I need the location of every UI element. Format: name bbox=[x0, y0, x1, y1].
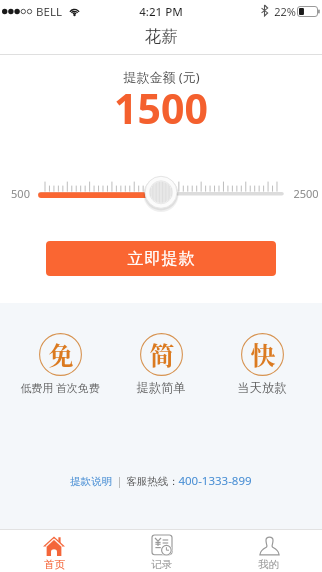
staticText: 花薪 bbox=[145, 26, 178, 47]
button[interactable] bbox=[0, 175, 322, 211]
staticText: BELL bbox=[36, 4, 62, 20]
staticText: 快 bbox=[250, 336, 276, 372]
staticText: 400-1333-899 bbox=[178, 473, 252, 489]
staticText: 立即提款 bbox=[127, 249, 195, 269]
button[interactable]: 记录 bbox=[108, 529, 215, 572]
staticText: 提款说明 bbox=[70, 475, 112, 488]
staticText: 免 bbox=[48, 336, 74, 372]
staticText: 提款简单 bbox=[136, 380, 186, 395]
staticText: 记录 bbox=[151, 558, 172, 571]
button[interactable]: 简 bbox=[101, 333, 221, 395]
button[interactable]: 我的 bbox=[215, 529, 322, 572]
staticText: 我的 bbox=[258, 558, 279, 571]
button[interactable]: 立即提款 bbox=[46, 241, 276, 276]
button[interactable]: 快 bbox=[202, 333, 322, 395]
staticText: 低费用 首次免费 bbox=[20, 380, 100, 395]
staticText: 1500 bbox=[114, 80, 208, 136]
staticText: 简 bbox=[149, 336, 175, 372]
staticText: 首页 bbox=[44, 558, 65, 571]
staticText: | bbox=[116, 473, 123, 489]
button[interactable]: 400-1333-899 bbox=[178, 473, 252, 489]
staticText: 22% bbox=[274, 4, 296, 19]
staticText: 提款金额 (元) bbox=[123, 68, 200, 86]
staticText: 500 bbox=[11, 186, 30, 201]
button[interactable]: 首页 bbox=[0, 529, 108, 572]
staticText: 客服热线： bbox=[126, 475, 179, 488]
staticText: 当天放款 bbox=[237, 380, 287, 395]
staticText: 2500 bbox=[293, 186, 319, 201]
button[interactable]: 提款说明 bbox=[70, 475, 112, 488]
staticText: 4:21 PM bbox=[139, 4, 183, 20]
button[interactable]: 免 bbox=[0, 333, 120, 395]
